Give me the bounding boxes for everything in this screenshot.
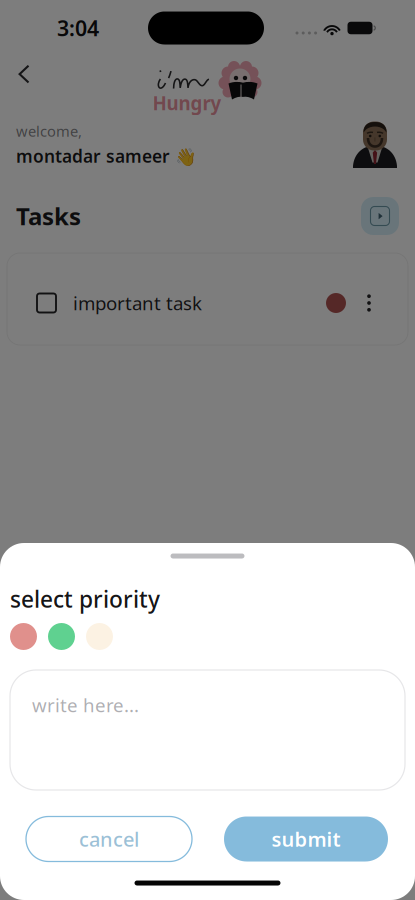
staticText: select priority: [10, 584, 160, 614]
staticText: Hungry: [152, 91, 221, 115]
button[interactable]: High priority: [10, 623, 37, 650]
staticText: cancel: [79, 826, 139, 852]
button[interactable]: Account: [353, 118, 397, 168]
staticText: montadar sameer 👋: [16, 144, 197, 167]
staticText: welcome,: [16, 121, 82, 141]
staticText: important task: [73, 291, 202, 315]
staticText: write here...: [32, 693, 139, 717]
button[interactable]: New task: [361, 197, 399, 235]
button[interactable]: Medium priority: [48, 623, 75, 650]
staticText: submit: [271, 826, 340, 852]
button[interactable]: important task: [0, 275, 415, 331]
button[interactable]: Note: [10, 670, 405, 790]
button[interactable]: Back: [5, 55, 43, 93]
staticText: 3:04: [57, 14, 99, 42]
staticText: Tasks: [16, 200, 81, 232]
button[interactable]: submit: [224, 816, 388, 861]
button[interactable]: Low priority: [86, 623, 113, 650]
button[interactable]: cancel: [26, 816, 192, 861]
